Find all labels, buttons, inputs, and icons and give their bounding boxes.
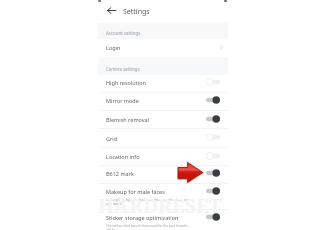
button[interactable]: Grid	[206, 133, 220, 141]
button[interactable]: Mirror mode	[206, 96, 220, 104]
staticText: B612 mark	[106, 170, 134, 177]
staticText: Grid	[106, 135, 118, 142]
button[interactable]	[98, 165, 228, 183]
button[interactable]	[98, 129, 228, 147]
button[interactable]: Blemish removal	[206, 115, 220, 123]
button[interactable]	[98, 183, 228, 209]
button[interactable]	[98, 75, 228, 92]
staticText: Makeup for male faces	[106, 188, 165, 195]
staticText: Sticker storage optimization	[106, 214, 179, 221]
staticText: Looking thin, lighter adjusts, say littl…	[106, 198, 192, 206]
staticText: The stickers that haven't been used for …	[106, 224, 192, 230]
staticText: HARDRESET	[98, 192, 222, 218]
staticText: Mirror mode	[106, 97, 139, 104]
staticText: Login	[106, 44, 121, 51]
other: Open Login	[219, 45, 224, 50]
staticText: Blemish removal	[106, 116, 150, 123]
button[interactable]	[98, 111, 228, 129]
staticText: High resolution	[106, 79, 146, 86]
staticText: Camera settings	[106, 66, 140, 72]
button[interactable]	[98, 209, 228, 230]
staticText: Location info	[106, 153, 140, 160]
button[interactable]	[98, 92, 228, 110]
staticText: Settings	[123, 7, 150, 17]
button[interactable]: Sticker storage optimization	[206, 213, 220, 221]
button[interactable]: High resolution	[206, 78, 220, 86]
button[interactable]	[98, 147, 228, 165]
button[interactable]: Location info	[206, 152, 220, 160]
button[interactable]: Back	[105, 4, 118, 17]
button[interactable]	[98, 38, 228, 58]
button[interactable]: Makeup for male faces	[206, 187, 220, 195]
staticText: Account settings	[106, 30, 141, 36]
button[interactable]: B612 mark	[206, 169, 220, 177]
